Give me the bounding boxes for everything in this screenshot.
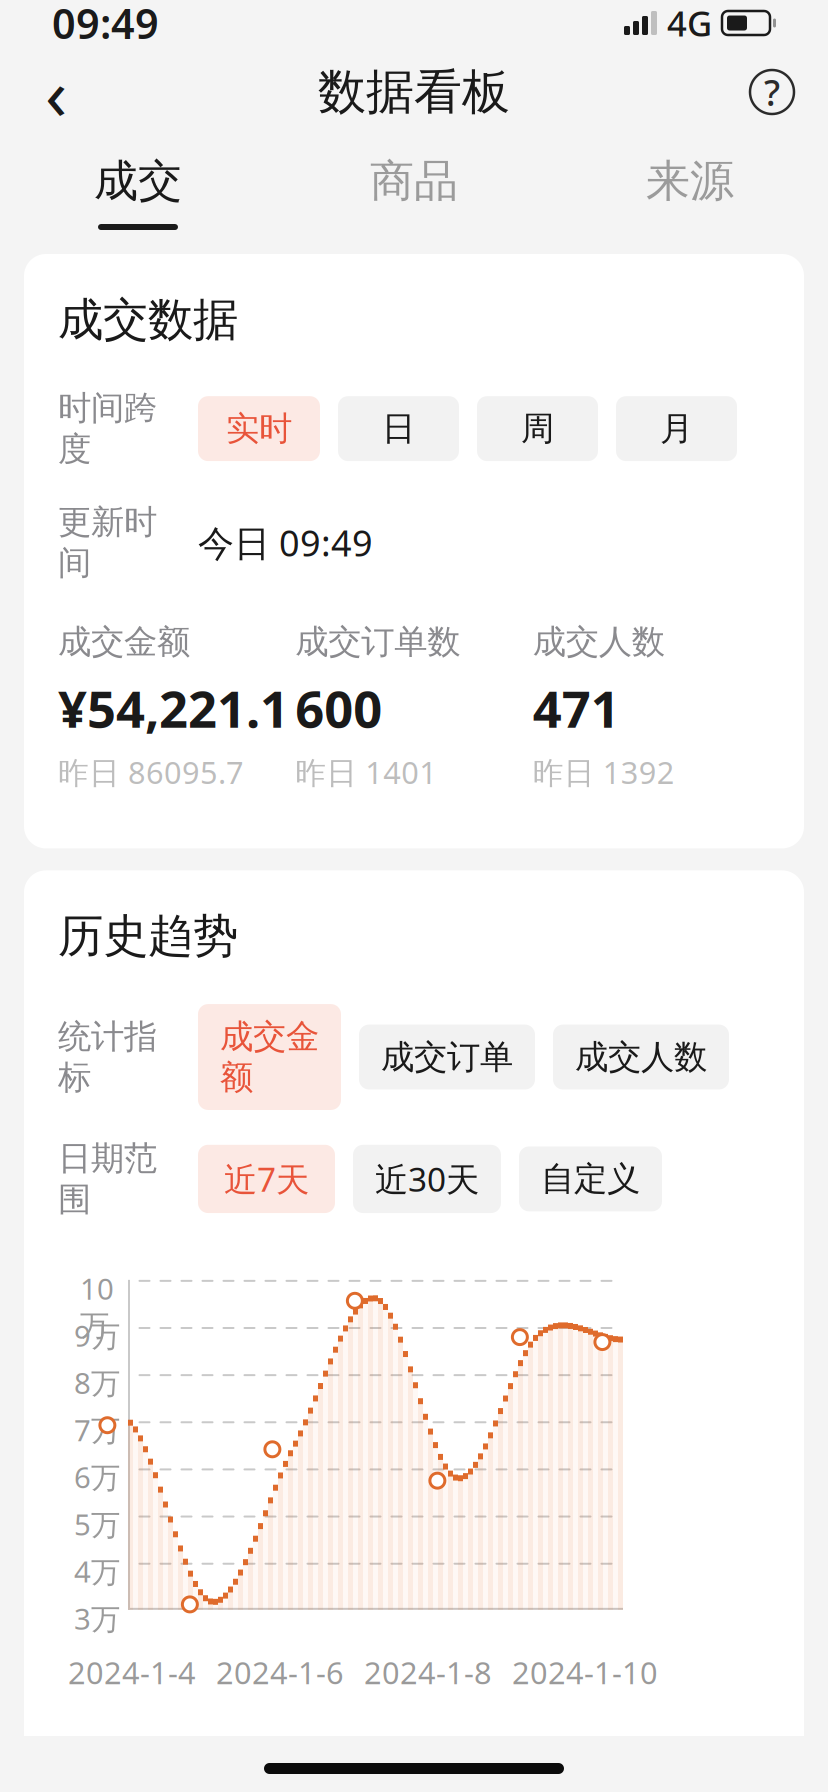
button[interactable]: 实时	[198, 396, 320, 461]
staticText: 更新时间	[58, 502, 157, 583]
staticText: 3万	[74, 1599, 120, 1638]
staticText: 09:49	[52, 0, 159, 50]
staticText: ¥54,221.1	[58, 674, 289, 742]
staticText: 近30天	[375, 1157, 479, 1201]
staticText: 成交人数	[533, 621, 665, 662]
staticText: 5万	[74, 1505, 120, 1544]
staticText: 4G	[667, 0, 712, 46]
staticText: 数据看板	[318, 62, 510, 121]
staticText: 统计指标	[58, 1016, 157, 1098]
staticText: 自定义	[541, 1158, 640, 1199]
staticText: 471	[533, 674, 620, 742]
staticText: 2024-1-10	[512, 1652, 658, 1693]
staticText: 2024-1-4	[68, 1652, 196, 1693]
staticText: 4万	[74, 1552, 120, 1591]
staticText: 成交人数	[575, 1037, 707, 1077]
staticText: ‹	[45, 44, 67, 140]
staticText: 9万	[74, 1316, 120, 1355]
staticText: 600	[295, 674, 382, 742]
staticText: 今日 09:49	[198, 519, 373, 566]
button[interactable]: 月	[616, 396, 737, 461]
staticText: 8万	[74, 1363, 120, 1402]
button[interactable]: 成交金额	[198, 1004, 341, 1110]
staticText: 7万	[74, 1410, 120, 1449]
staticText: 2024-1-8	[364, 1652, 492, 1693]
button[interactable]: 近7天	[198, 1145, 335, 1213]
staticText: 成交订单数	[295, 621, 460, 662]
button[interactable]: Back	[24, 60, 88, 124]
staticText: 6万	[74, 1457, 120, 1496]
staticText: 10万	[80, 1269, 114, 1344]
staticText: 实时	[226, 408, 292, 449]
staticText: 成交订单	[381, 1037, 513, 1077]
staticText: 时间跨度	[58, 388, 157, 470]
staticText: 昨日 86095.7	[58, 752, 244, 792]
staticText: 成交金额	[58, 621, 190, 662]
button[interactable]: 周	[477, 396, 598, 461]
staticText: 成交数据	[58, 292, 238, 348]
staticText: 来源	[646, 154, 734, 208]
button[interactable]: 日	[338, 396, 459, 461]
staticText: 昨日 1401	[295, 752, 437, 792]
staticText: 日	[382, 408, 415, 449]
staticText: ?	[764, 68, 780, 116]
button[interactable]: 商品	[276, 136, 552, 238]
staticText: 2024-1-6	[216, 1652, 344, 1693]
button[interactable]: Help	[740, 60, 804, 124]
staticText: 成交	[94, 154, 182, 208]
button[interactable]: 自定义	[519, 1146, 662, 1211]
staticText: 历史趋势	[58, 908, 238, 964]
staticText: 月	[660, 408, 693, 449]
staticText: 近7天	[224, 1157, 309, 1201]
button[interactable]: 成交人数	[553, 1025, 729, 1089]
button[interactable]: 成交	[0, 136, 276, 238]
staticText: 成交金额	[220, 1016, 319, 1098]
staticText: 商品	[370, 154, 458, 208]
button[interactable]: 成交订单	[359, 1025, 535, 1089]
button[interactable]: 来源	[552, 136, 828, 238]
staticText: 昨日 1392	[533, 752, 675, 792]
staticText: 周	[521, 408, 554, 449]
button[interactable]: 近30天	[353, 1145, 501, 1213]
staticText: 日期范围	[58, 1138, 157, 1220]
